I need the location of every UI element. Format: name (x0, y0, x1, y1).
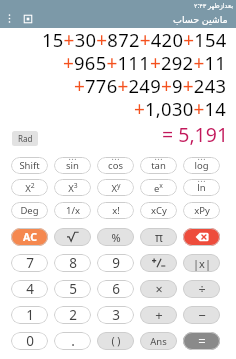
staticText: x! (112, 204, 120, 217)
staticText: tan (151, 159, 166, 172)
staticText: 9 (112, 254, 120, 272)
button[interactable]: % (97, 228, 134, 246)
staticText: . (71, 332, 75, 350)
staticText: Deg (20, 204, 39, 217)
button[interactable]: ( ) (97, 332, 134, 350)
staticText: = 5,191 (162, 121, 229, 148)
staticText: 7 (26, 254, 34, 272)
staticText: +1,030+14 (134, 96, 227, 119)
button[interactable]: log (183, 157, 220, 174)
button[interactable]: xPy (183, 202, 220, 219)
staticText: 1/x (66, 204, 80, 217)
staticText: +965+111+292+11 (63, 50, 227, 73)
button[interactable]: . (54, 332, 91, 350)
staticText: 0 (26, 332, 34, 350)
staticText: + (155, 306, 163, 324)
staticText: = (198, 332, 206, 350)
button[interactable]: AC (11, 228, 48, 246)
staticText: Rad (18, 133, 33, 144)
staticText: xPy (194, 204, 210, 217)
staticText: 5 (69, 280, 77, 298)
staticText: π (155, 229, 163, 245)
button[interactable]: X3 (54, 179, 91, 196)
staticText: 3 (112, 306, 120, 324)
staticText: ln (197, 181, 206, 194)
staticText: ÷ (198, 281, 206, 298)
button[interactable]: 9 (97, 254, 134, 272)
staticText: 1 (26, 306, 34, 324)
staticText: AC (23, 230, 37, 244)
staticText: − (198, 306, 206, 324)
button[interactable]: ex (140, 179, 177, 196)
button[interactable]: Backspace (183, 228, 220, 246)
button[interactable]: 4 (11, 280, 48, 298)
button[interactable]: tan (140, 157, 177, 174)
button[interactable]: 8 (54, 254, 91, 272)
button[interactable]: 5 (54, 280, 91, 298)
button[interactable]: |x| (183, 254, 220, 272)
button[interactable]: 1/x (54, 202, 91, 219)
button[interactable]: Plus minus (140, 254, 177, 272)
staticText: xCy (151, 204, 167, 217)
button[interactable]: Xy (97, 179, 134, 196)
button[interactable]: = (183, 332, 220, 350)
staticText: ( ) (111, 334, 121, 348)
staticText: % (111, 230, 121, 245)
button[interactable]: + (140, 306, 177, 324)
staticText: ۲:۴۳ بعدازظهر (194, 1, 233, 10)
button[interactable]: sin (54, 157, 91, 174)
button[interactable]: 2 (54, 306, 91, 324)
staticText: 2 (69, 306, 77, 324)
staticText: 8 (69, 254, 77, 272)
staticText: +776+249+9+243 (74, 73, 227, 96)
staticText: sin (66, 159, 79, 172)
staticText: ex (154, 181, 163, 194)
button[interactable]: Shift (11, 157, 48, 174)
button[interactable]: History (22, 13, 34, 25)
staticText: 15+30+872+420+154 (42, 27, 227, 50)
button[interactable]: X2 (11, 179, 48, 196)
button[interactable]: − (183, 306, 220, 324)
button[interactable]: 0 (11, 332, 48, 350)
staticText: X3 (68, 181, 78, 194)
button[interactable]: xCy (140, 202, 177, 219)
staticText: |x| (193, 256, 211, 271)
button[interactable]: 1 (11, 306, 48, 324)
button[interactable]: ÷ (183, 280, 220, 298)
button[interactable]: Square root (54, 228, 91, 246)
button[interactable]: 7 (11, 254, 48, 272)
button[interactable]: Ans (140, 332, 177, 350)
button[interactable]: × (140, 280, 177, 298)
staticText: Ans (150, 335, 167, 348)
staticText: cos (108, 159, 123, 172)
button[interactable]: π (140, 228, 177, 246)
staticText: 4 (26, 280, 34, 298)
button[interactable]: x! (97, 202, 134, 219)
button[interactable]: Deg (11, 202, 48, 219)
staticText: Shift (19, 159, 40, 172)
staticText: 6 (112, 280, 120, 298)
staticText: log (194, 159, 209, 172)
staticText: ماشین حساب (173, 13, 228, 26)
button[interactable]: More options (4, 13, 15, 24)
staticText: Xy (111, 181, 121, 194)
button[interactable]: ln (183, 179, 220, 196)
button[interactable]: cos (97, 157, 134, 174)
staticText: X2 (25, 181, 35, 194)
button[interactable]: 6 (97, 280, 134, 298)
button[interactable]: Rad (12, 131, 38, 146)
staticText: × (155, 281, 163, 298)
button[interactable]: 3 (97, 306, 134, 324)
